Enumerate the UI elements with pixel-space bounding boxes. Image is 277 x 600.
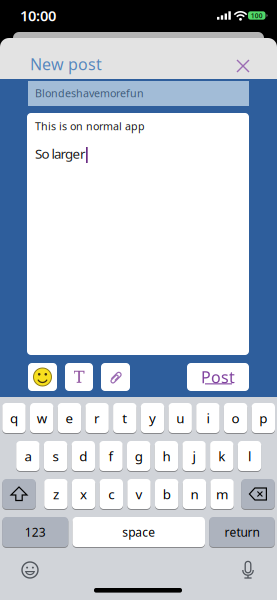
staticText: c [108,485,114,503]
staticText: a [24,447,31,465]
staticText: h [162,447,170,465]
staticText: x [80,485,87,503]
button[interactable]: 123 [2,517,68,548]
staticText: e [65,409,73,427]
button[interactable]: g [127,441,150,472]
staticText: g [135,447,143,465]
staticText: 10:00 [20,6,56,25]
staticText: t [122,409,127,427]
staticText: l [248,447,251,465]
button[interactable]: c [100,479,123,510]
staticText: return [224,524,259,540]
button[interactable]: Post [187,363,249,391]
staticText: m [216,485,228,503]
button[interactable]: Shift [2,479,36,510]
button[interactable]: Delete [241,479,275,510]
button[interactable]: y [141,403,164,434]
button[interactable]: d [72,441,95,472]
button[interactable]: e [58,403,81,434]
staticText: n [190,485,198,503]
staticText: f [108,447,113,465]
button[interactable]: r [85,403,109,434]
button[interactable]: x [72,479,95,510]
button[interactable]: Attach file [101,363,130,391]
staticText: space [122,524,155,540]
button[interactable]: k [210,441,233,472]
staticText: d [79,447,87,465]
staticText: b [163,485,171,503]
staticText: s [53,447,59,465]
button[interactable]: b [155,479,178,510]
button[interactable]: j [182,441,206,472]
button[interactable]: Emoji keyboard [16,556,44,584]
staticText: 123 [25,524,46,540]
button[interactable]: u [168,403,192,434]
button[interactable]: f [99,441,123,472]
staticText: 100 [251,11,263,20]
staticText: Blondeshavemorefun [35,86,144,100]
staticText: y [149,409,156,427]
staticText: New post [30,53,102,75]
button[interactable]: o [224,403,247,434]
staticText: o [232,409,240,427]
staticText: q [10,409,18,427]
button[interactable]: p [252,403,275,434]
button[interactable]: Text style [65,363,93,391]
staticText: k [218,447,225,465]
button[interactable]: return [209,517,275,548]
staticText: v [135,485,142,503]
staticText: r [94,409,100,427]
button[interactable]: m [210,479,234,510]
staticText: p [259,409,267,427]
staticText: i [206,409,209,427]
staticText: This is on normal app [35,119,145,133]
button[interactable]: t [113,403,136,434]
button[interactable]: Close [229,52,257,80]
button[interactable]: w [30,403,53,434]
button[interactable]: s [44,441,67,472]
button[interactable]: Emoji [28,363,57,391]
staticText: u [176,409,184,427]
staticText: z [53,485,59,503]
button[interactable]: space [72,517,205,548]
button[interactable]: h [155,441,178,472]
button[interactable]: a [16,441,40,472]
staticText: So larger [35,145,86,162]
button[interactable]: Dictation [234,556,262,584]
staticText: T [73,367,84,387]
staticText: w [37,409,47,427]
button[interactable]: n [183,479,206,510]
button[interactable]: v [127,479,151,510]
staticText: Post [201,366,235,388]
button[interactable]: q [2,403,26,434]
button[interactable]: l [238,441,261,472]
button[interactable]: i [196,403,220,434]
button[interactable]: z [44,479,68,510]
staticText: j [193,447,196,465]
